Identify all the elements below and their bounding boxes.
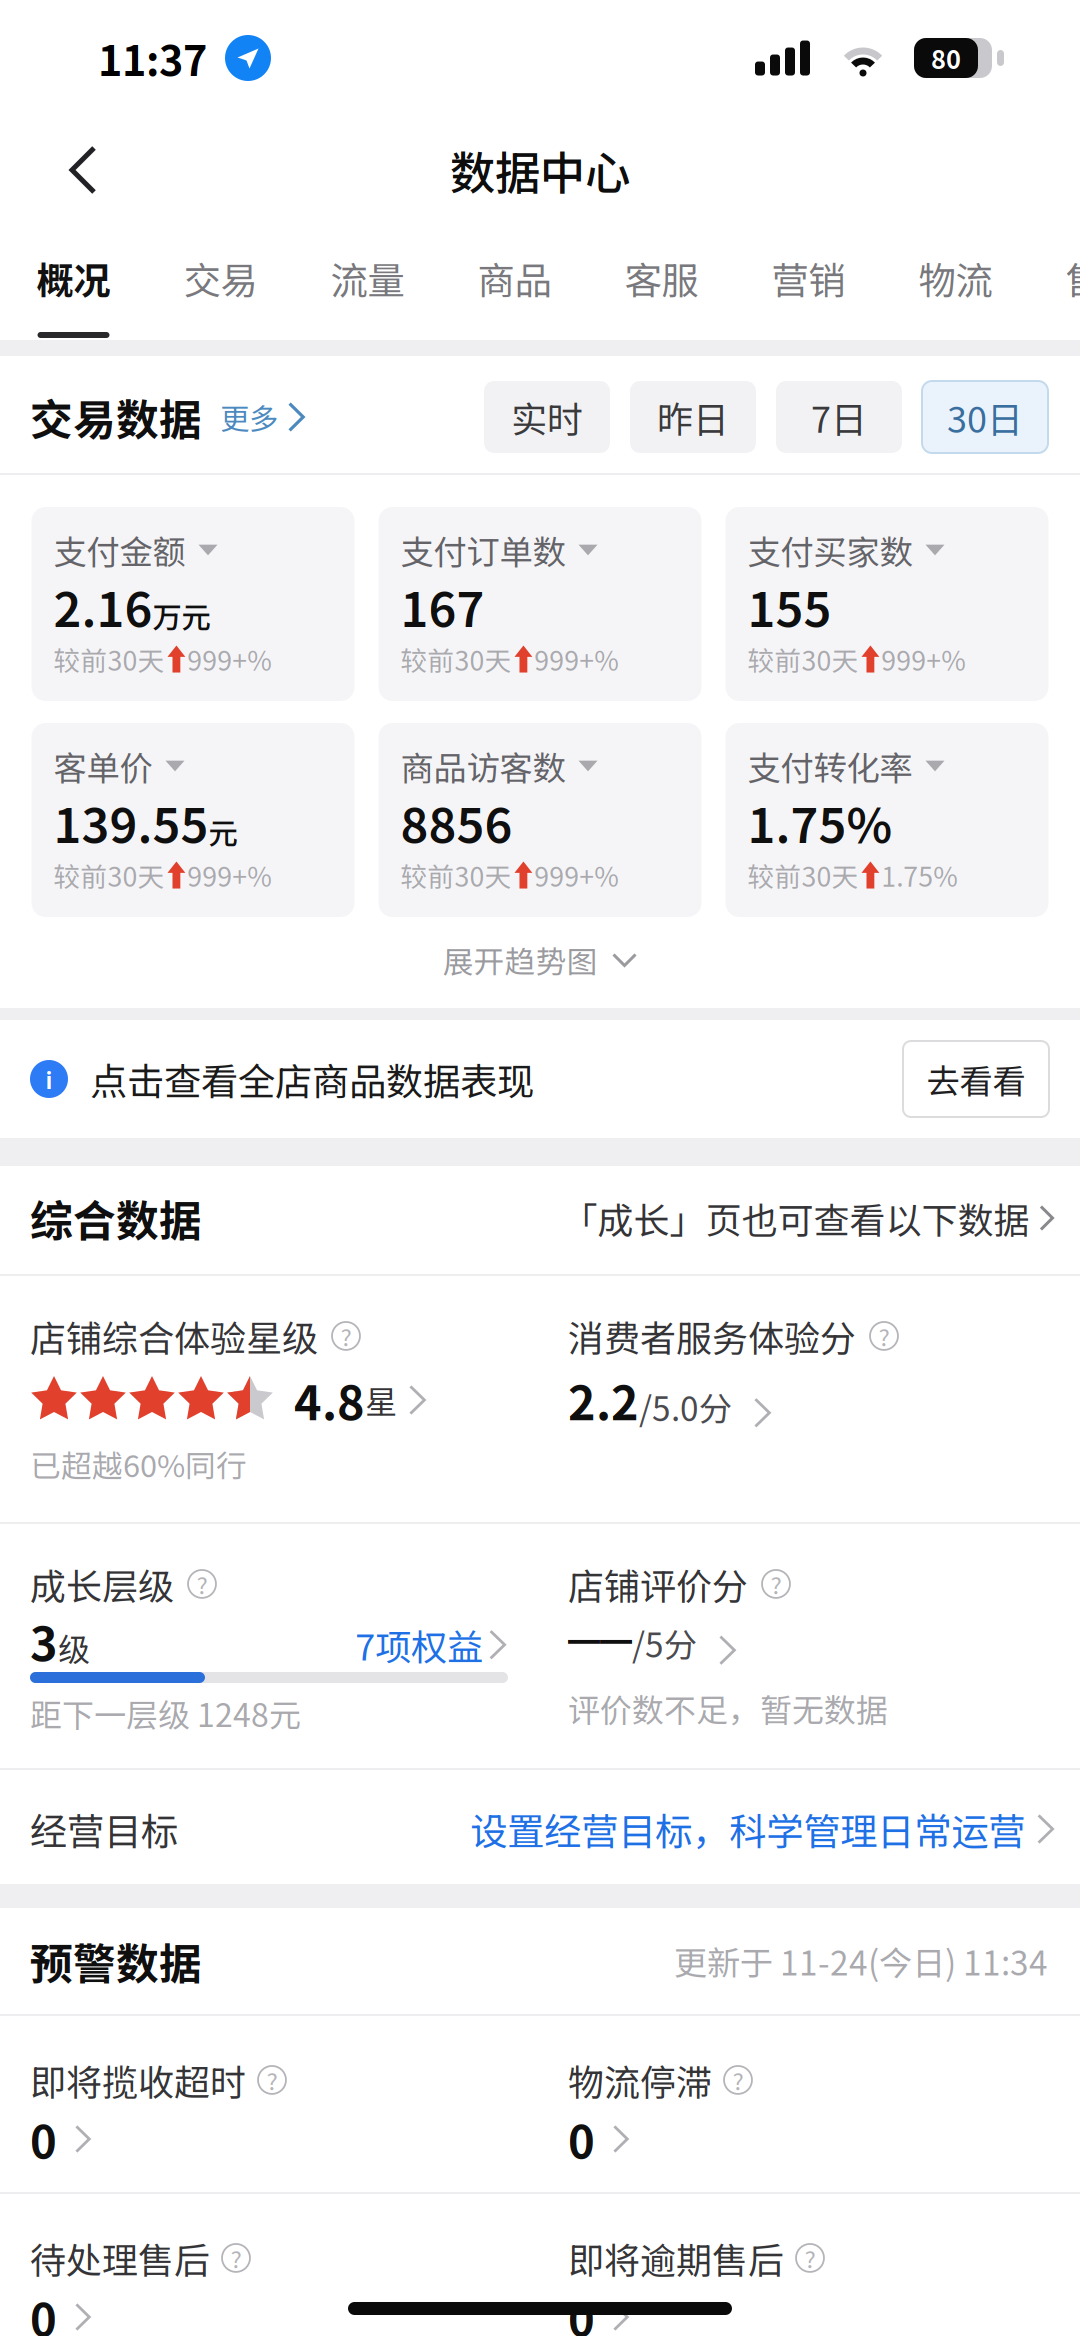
staticText: 售后: [1065, 251, 1080, 305]
staticText: 支付转化率: [747, 742, 912, 790]
button[interactable]: 售后: [1029, 224, 1080, 340]
staticText: 较前30天: [747, 640, 858, 678]
staticText: 更新于 11-24(今日) 11:34: [674, 1937, 1048, 1985]
button[interactable]: 2.2: [568, 1362, 1054, 1438]
button[interactable]: 更多: [202, 384, 305, 450]
staticText: 展开趋势图: [442, 938, 597, 982]
button[interactable]: 支付订单数: [378, 507, 701, 701]
button[interactable]: 去看看: [903, 1041, 1049, 1117]
staticText: 点击查看全店商品数据表现: [90, 1052, 534, 1106]
staticText: 较前30天: [400, 640, 511, 678]
staticText: 1.75%: [747, 787, 892, 857]
staticText: 万元: [152, 594, 210, 637]
staticText: 7日: [811, 391, 867, 443]
button[interactable]: 经营目标: [0, 1770, 1080, 1888]
staticText: ?: [878, 1319, 889, 1353]
staticText: 1.75%: [881, 856, 958, 894]
staticText: 预警数据: [30, 1930, 202, 1992]
staticText: 支付订单数: [400, 526, 565, 574]
button[interactable]: 客服: [588, 224, 735, 340]
staticText: 昨日: [657, 391, 729, 443]
staticText: 实时: [511, 391, 583, 443]
staticText: /5.0分: [639, 1382, 732, 1431]
staticText: ?: [732, 2063, 743, 2097]
button[interactable]: 30日: [922, 381, 1048, 453]
staticText: 0: [568, 2106, 595, 2172]
staticText: 元: [208, 810, 237, 853]
button[interactable]: 待处理售后: [30, 2194, 568, 2336]
staticText: 11:37: [98, 28, 207, 88]
staticText: 4.8: [294, 1366, 365, 1434]
staticText: 30日: [947, 391, 1023, 443]
staticText: 级: [58, 1624, 90, 1671]
staticText: 数据中心: [450, 137, 630, 203]
button[interactable]: 概况: [0, 224, 147, 340]
button[interactable]: 支付金额: [31, 507, 354, 701]
button[interactable]: Back: [0, 115, 166, 225]
button[interactable]: 「成长」页也可查看以下数据: [561, 1185, 1054, 1251]
staticText: 商品访客数: [400, 742, 565, 790]
button[interactable]: 7日: [776, 381, 902, 453]
staticText: 80: [931, 40, 961, 76]
staticText: 即将逾期售后: [568, 2232, 784, 2284]
button[interactable]: 7项权益: [355, 1619, 506, 1675]
staticText: 139.55: [53, 787, 208, 857]
staticText: ━━: [568, 1617, 632, 1663]
button[interactable]: 流量: [294, 224, 441, 340]
staticText: 经营目标: [30, 1802, 178, 1856]
staticText: 星: [365, 1377, 397, 1423]
staticText: 流量: [330, 251, 404, 305]
staticText: 支付金额: [53, 526, 185, 574]
staticText: 0: [30, 2106, 57, 2172]
staticText: 「成长」页也可查看以下数据: [561, 1192, 1029, 1244]
staticText: 距下一层级 1248元: [30, 1690, 301, 1736]
button[interactable]: 商品: [441, 224, 588, 340]
staticText: 3: [30, 1607, 58, 1675]
staticText: 2.16: [53, 571, 152, 641]
staticText: 店铺评价分: [568, 1558, 748, 1610]
button[interactable]: 支付买家数: [725, 507, 1048, 701]
button[interactable]: 昨日: [630, 381, 756, 453]
staticText: 0: [568, 2284, 595, 2336]
button[interactable]: ━━: [568, 1610, 1054, 1678]
staticText: 物流停滞: [568, 2054, 712, 2106]
button[interactable]: 即将逾期售后: [568, 2194, 1080, 2336]
staticText: /5分: [632, 1619, 697, 1667]
button[interactable]: 客单价: [31, 723, 354, 917]
staticText: 0: [30, 2284, 57, 2336]
button[interactable]: 商品访客数: [378, 723, 701, 917]
staticText: 999+%: [534, 856, 619, 894]
staticText: 消费者服务体验分: [568, 1310, 856, 1362]
staticText: 综合数据: [30, 1187, 202, 1249]
staticText: 设置经营目标，科学管理日常运营: [470, 1802, 1025, 1856]
staticText: 较前30天: [53, 640, 164, 678]
staticText: 概况: [36, 251, 110, 305]
button[interactable]: 实时: [484, 381, 610, 453]
staticText: 更多: [220, 396, 278, 438]
button[interactable]: 交易: [147, 224, 294, 340]
button[interactable]: 物流: [882, 224, 1029, 340]
staticText: ?: [230, 2241, 241, 2275]
staticText: ?: [770, 1567, 781, 1601]
staticText: ?: [196, 1567, 207, 1601]
staticText: 999+%: [881, 640, 966, 678]
staticText: 155: [747, 571, 831, 641]
button[interactable]: 4.8: [30, 1362, 568, 1438]
staticText: 成长层级: [30, 1558, 174, 1610]
staticText: 999+%: [534, 640, 619, 678]
button[interactable]: 展开趋势图: [0, 917, 1080, 1003]
staticText: 交易数据: [30, 386, 202, 448]
staticText: 8856: [400, 787, 512, 857]
button[interactable]: 即将揽收超时: [30, 2016, 568, 2192]
staticText: 物流: [918, 251, 992, 305]
button[interactable]: 支付转化率: [725, 723, 1048, 917]
button[interactable]: 营销: [735, 224, 882, 340]
staticText: 较前30天: [747, 856, 858, 894]
staticText: 即将揽收超时: [30, 2054, 246, 2106]
staticText: 999+%: [187, 640, 272, 678]
button[interactable]: i: [30, 1052, 534, 1106]
button[interactable]: 物流停滞: [568, 2016, 1080, 2192]
staticText: 167: [400, 571, 484, 641]
staticText: 商品: [477, 251, 551, 305]
staticText: 已超越60%同行: [30, 1442, 247, 1486]
